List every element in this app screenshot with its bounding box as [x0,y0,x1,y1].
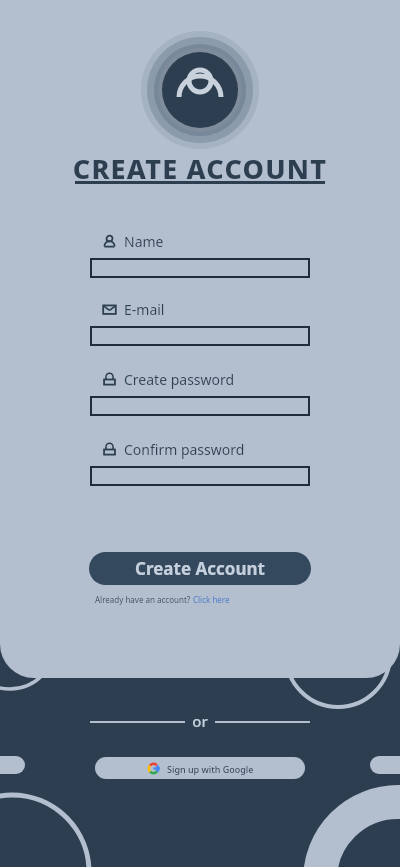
button[interactable] [90,396,310,416]
staticText: E-mail [124,300,165,319]
staticText: Confirm password [124,440,245,459]
staticText: or [186,711,214,731]
staticText: Name [124,232,164,251]
button[interactable] [90,258,310,278]
staticText: Already have an account? [95,594,193,605]
staticText: Click here [193,594,230,605]
other: Google [147,762,160,775]
staticText: CREATE ACCOUNT [0,150,400,187]
staticText: Create Account [135,557,265,580]
button[interactable]: Create Account [89,552,311,585]
button[interactable] [90,326,310,346]
staticText: Sign up with Google [167,763,254,775]
button[interactable] [90,466,310,486]
staticText: Create password [124,370,235,389]
button[interactable]: Google [95,757,305,779]
button[interactable]: Already have an account? [95,594,230,605]
